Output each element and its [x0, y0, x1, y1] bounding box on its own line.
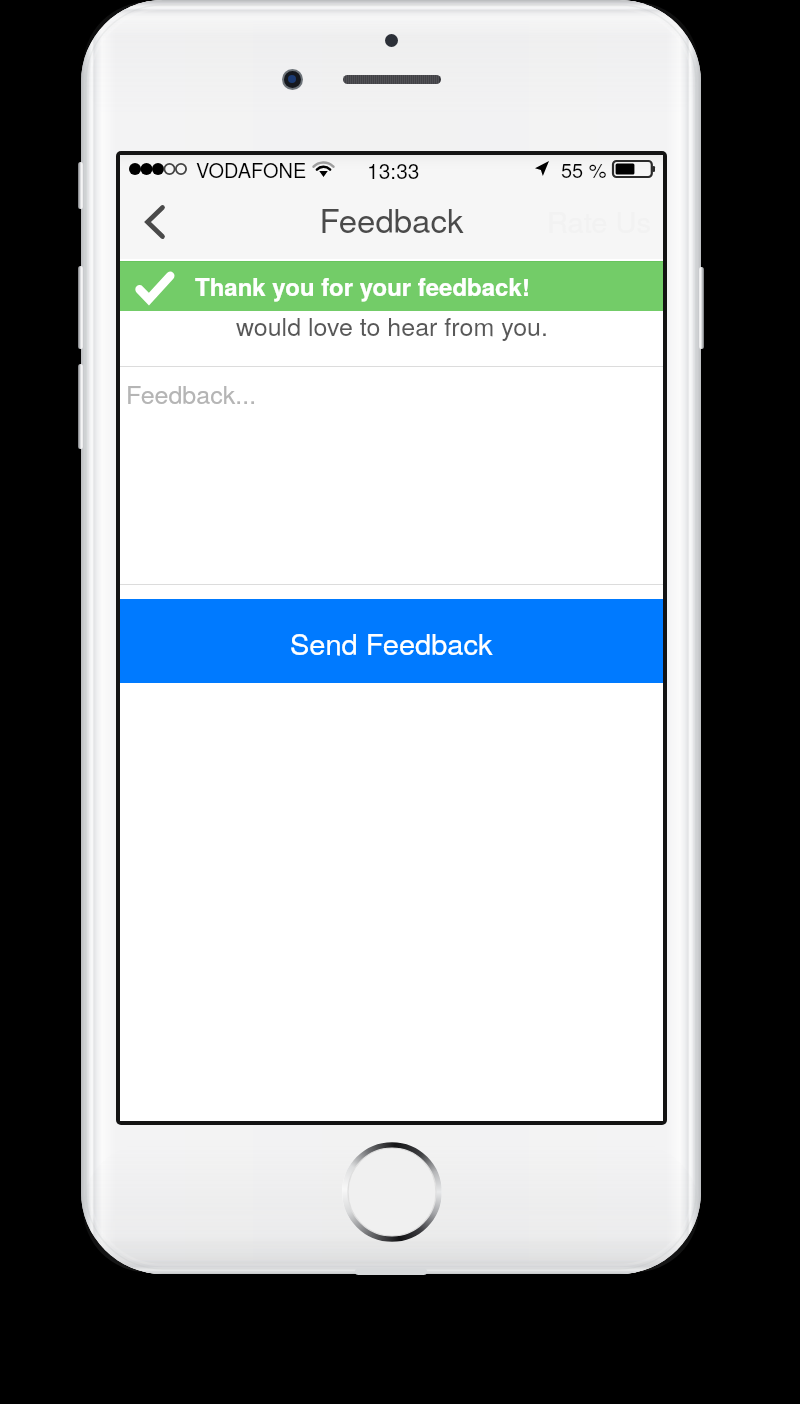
staticText: 13:33	[367, 155, 420, 182]
button[interactable]: Send Feedback	[120, 599, 663, 683]
staticText: VODAFONE	[196, 155, 307, 182]
staticText: Thank you for your feedback!	[195, 269, 530, 303]
staticText: Feedback...	[126, 375, 257, 411]
staticText: Send Feedback	[290, 622, 493, 664]
staticText: Feedback	[319, 195, 464, 242]
button[interactable]: Feedback...	[120, 367, 663, 584]
staticText: 55 %	[561, 155, 607, 182]
button[interactable]: Back	[120, 182, 182, 259]
staticText: would love to hear from you.	[236, 307, 548, 343]
